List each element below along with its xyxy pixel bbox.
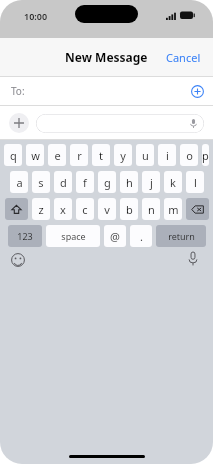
button[interactable]: x — [54, 198, 72, 220]
button[interactable]: b — [120, 198, 138, 220]
button[interactable]: u — [136, 144, 154, 166]
button[interactable]: h — [120, 171, 138, 193]
staticText: z — [38, 202, 44, 217]
staticText: u — [142, 148, 149, 163]
button[interactable]: r — [70, 144, 88, 166]
button[interactable]: v — [98, 198, 116, 220]
button[interactable]: q — [4, 144, 22, 166]
staticText: New Message — [65, 49, 148, 65]
button[interactable]: To: — [0, 77, 213, 105]
staticText: space — [61, 230, 86, 242]
button[interactable]: return — [156, 225, 206, 247]
staticText: f — [83, 175, 87, 190]
staticText: p — [202, 148, 209, 163]
staticText: b — [126, 202, 133, 217]
staticText: w — [31, 148, 40, 163]
staticText: k — [170, 175, 176, 190]
button[interactable]: Add contact — [189, 83, 205, 99]
button[interactable]: w — [26, 144, 44, 166]
staticText: j — [150, 175, 153, 190]
staticText: v — [104, 202, 110, 217]
button[interactable]: o — [180, 144, 198, 166]
staticText: g — [104, 175, 111, 190]
staticText: a — [16, 175, 23, 190]
button[interactable]: s — [32, 171, 50, 193]
staticText: n — [148, 202, 155, 217]
button[interactable]: c — [76, 198, 94, 220]
button[interactable]: d — [54, 171, 72, 193]
button[interactable]: y — [114, 144, 132, 166]
button[interactable]: m — [164, 198, 182, 220]
button[interactable]: space — [46, 225, 100, 247]
staticText: l — [194, 175, 197, 190]
staticText: m — [168, 202, 179, 217]
button[interactable]: e — [48, 144, 66, 166]
staticText: x — [60, 202, 66, 217]
staticText: e — [54, 148, 61, 163]
staticText: 123 — [17, 230, 33, 242]
staticText: r — [77, 148, 82, 163]
staticText: To: — [11, 84, 25, 98]
staticText: 10:00 — [24, 10, 48, 22]
button[interactable]: a — [10, 171, 28, 193]
staticText: q — [10, 148, 17, 163]
button[interactable]: Cancel — [154, 38, 213, 76]
staticText: d — [60, 175, 67, 190]
button[interactable]: j — [142, 171, 160, 193]
staticText: Cancel — [166, 50, 201, 65]
staticText: . — [140, 229, 143, 244]
button[interactable] — [5, 198, 28, 220]
staticText: h — [126, 175, 133, 190]
button[interactable]: @ — [104, 225, 126, 247]
staticText: s — [38, 175, 44, 190]
button[interactable]: z — [32, 198, 50, 220]
button[interactable]: g — [98, 171, 116, 193]
staticText: y — [120, 148, 126, 163]
button[interactable]: n — [142, 198, 160, 220]
staticText: o — [186, 148, 193, 163]
staticText: i — [166, 148, 169, 163]
button[interactable]: i — [158, 144, 176, 166]
button[interactable] — [186, 198, 209, 220]
button[interactable]: Dictation — [186, 252, 200, 266]
staticText: c — [82, 202, 88, 217]
staticText: @ — [110, 229, 120, 244]
staticText: t — [99, 148, 103, 163]
button[interactable]: t — [92, 144, 110, 166]
button[interactable]: f — [76, 171, 94, 193]
button[interactable]: p — [202, 144, 209, 166]
button[interactable]: Dictate — [36, 114, 204, 133]
button[interactable]: More options — [9, 113, 29, 133]
button[interactable]: l — [186, 171, 204, 193]
button[interactable]: k — [164, 171, 182, 193]
button[interactable]: 123 — [8, 225, 42, 247]
other: Dictate — [189, 119, 198, 128]
button[interactable]: Emoji — [11, 253, 25, 267]
button[interactable]: . — [130, 225, 152, 247]
staticText: return — [168, 230, 195, 242]
